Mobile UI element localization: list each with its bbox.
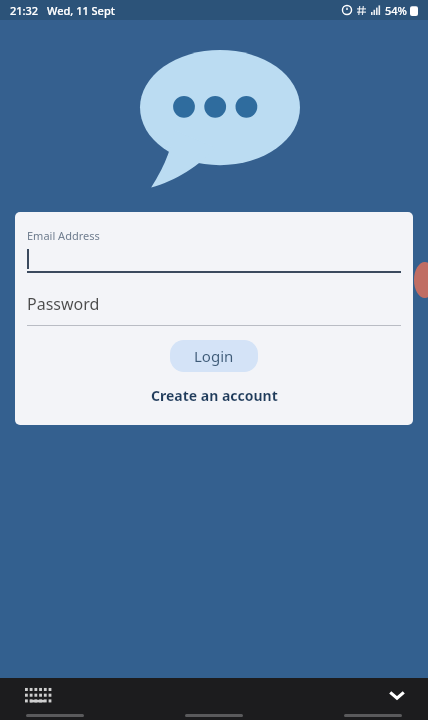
staticText: Email Address — [27, 228, 100, 243]
button[interactable]: Password — [27, 289, 401, 319]
staticText: Create an account — [151, 386, 278, 405]
staticText: Wed, 11 Sept — [47, 3, 115, 18]
staticText: Password — [27, 293, 100, 315]
button[interactable]: Keyboard — [22, 684, 52, 706]
button[interactable] — [27, 247, 401, 271]
button[interactable]: Login — [170, 340, 258, 372]
staticText: 21:32 — [10, 3, 39, 18]
button[interactable]: Create an account — [143, 382, 286, 409]
button[interactable]: Hide keyboard — [384, 682, 410, 708]
staticText: Login — [194, 346, 234, 366]
staticText: 54% — [385, 3, 407, 18]
